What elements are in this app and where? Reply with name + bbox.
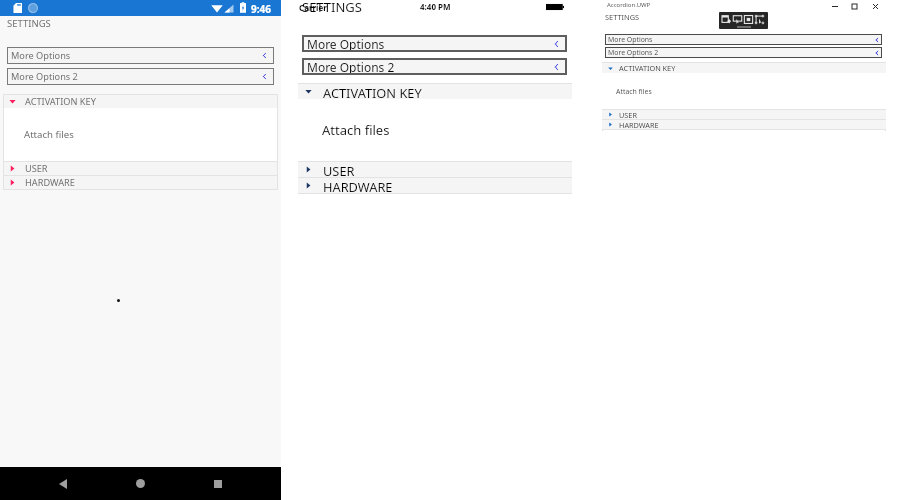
button[interactable]: Minimize	[824, 0, 845, 12]
button[interactable]: ACTIVATION KEY	[298, 84, 572, 99]
button[interactable]: Close	[865, 0, 886, 12]
staticText: Carrier	[299, 2, 327, 13]
button[interactable]: ACTIVATION KEY	[3, 95, 278, 108]
staticText: 9:46	[251, 2, 271, 16]
button[interactable]: More Options 2	[605, 47, 882, 58]
staticText: More Options 2	[608, 48, 659, 57]
button[interactable]: More Options	[7, 47, 274, 64]
staticText: Accordion.UWP	[607, 1, 651, 9]
staticText: SETTINGS	[302, 0, 362, 16]
button[interactable]: Recents	[202, 467, 234, 500]
staticText: USER	[25, 162, 48, 175]
staticText: HARDWARE	[25, 176, 75, 189]
staticText: More Options	[307, 36, 385, 52]
button[interactable]: More Options 2	[7, 68, 274, 85]
button[interactable]: More Options 2	[302, 58, 567, 75]
staticText: SETTINGS	[605, 12, 640, 22]
staticText: HARDWARE	[619, 120, 659, 129]
staticText: Attach files	[616, 87, 652, 96]
staticText: ACTIVATION KEY	[619, 63, 676, 73]
staticText: More Options	[11, 49, 71, 62]
button[interactable]: Home	[124, 467, 156, 500]
staticText: USER	[619, 110, 637, 119]
button[interactable]: More Options	[302, 35, 567, 52]
button[interactable]: Debug tool 4	[754, 13, 765, 26]
staticText: HARDWARE	[323, 178, 393, 193]
staticText: ACTIVATION KEY	[25, 95, 96, 108]
button[interactable]: HARDWARE	[298, 178, 572, 193]
button[interactable]: USER	[3, 162, 278, 175]
staticText: ACTIVATION KEY	[323, 84, 422, 99]
button[interactable]: More Options	[605, 34, 882, 45]
staticText: More Options	[608, 35, 653, 44]
button[interactable]: Debug tool 1	[721, 13, 732, 26]
button[interactable]: HARDWARE	[602, 120, 886, 129]
button[interactable]: Maximize	[844, 0, 865, 12]
staticText: 4:40 PM	[420, 1, 451, 12]
button[interactable]: ACTIVATION KEY	[602, 63, 886, 73]
button[interactable]: Debug tool 3	[743, 13, 754, 26]
button[interactable]: HARDWARE	[3, 176, 278, 189]
staticText: More Options 2	[11, 70, 78, 83]
staticText: Attach files	[24, 128, 74, 141]
button[interactable]: USER	[602, 110, 886, 119]
staticText: USER	[323, 162, 355, 177]
staticText: SETTINGS	[7, 17, 51, 30]
button[interactable]: USER	[298, 162, 572, 177]
staticText: Attach files	[322, 121, 390, 139]
button[interactable]: Debug tool 2	[732, 13, 743, 26]
button[interactable]: Back	[47, 467, 79, 500]
staticText: More Options 2	[307, 59, 395, 75]
